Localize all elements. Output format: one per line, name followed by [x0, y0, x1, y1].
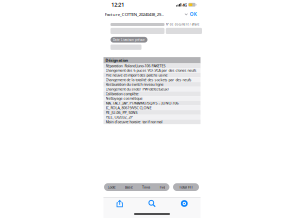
staticText: Tva	[159, 185, 165, 190]
staticText: IC_ROLA_80619/VSC CLONE	[105, 105, 151, 110]
staticText: Code	[108, 185, 116, 190]
staticText: N° de document / affaire	[166, 23, 200, 26]
staticText: Pile neuve et import des patchs usine	[105, 72, 167, 78]
staticText: Total HT	[179, 185, 193, 190]
staticText: 12:21	[111, 1, 124, 8]
button[interactable]: Date Livraison prévue	[110, 37, 147, 43]
staticText: Base	[125, 185, 133, 190]
staticText: Désignation	[105, 58, 128, 63]
staticText: MA_TACT_JAP_PT/MA/MU/SQ/FS – JUNO-106	[105, 101, 178, 106]
staticText: Changement de la totalité des sockets pa…	[105, 77, 191, 82]
staticText: Txva	[142, 185, 150, 190]
staticText: 4G	[182, 2, 187, 8]
staticText: Changement des 6 puces VCF-VCA par des c…	[105, 68, 196, 73]
staticText: Date Livraison prévue	[113, 38, 145, 42]
staticText: Calibration complète	[105, 91, 138, 96]
staticText: OK	[190, 11, 197, 17]
button[interactable]: Document options	[183, 12, 189, 16]
staticText: Restauration du switch niveau ligne	[105, 82, 163, 87]
staticText: Nettoyage cosmétique	[105, 96, 142, 101]
staticText: Main d'oeuvre horaire tarif normal	[105, 119, 162, 124]
button[interactable]: OK	[189, 11, 197, 17]
staticText: PILE_CR2032_2P	[105, 115, 132, 120]
button[interactable]: Settings	[168, 198, 200, 209]
staticText: Facture_COTTEN_20240438_29...	[105, 11, 164, 17]
button[interactable]: Search	[136, 198, 168, 209]
staticText: Réparation Roland Juno-106 PAKETES	[105, 63, 165, 68]
button[interactable]: Share	[104, 198, 136, 209]
staticText: Changement du slider PW (défectueux)	[105, 86, 168, 92]
staticText: PE_JU-06_PP_50NS	[105, 110, 137, 115]
